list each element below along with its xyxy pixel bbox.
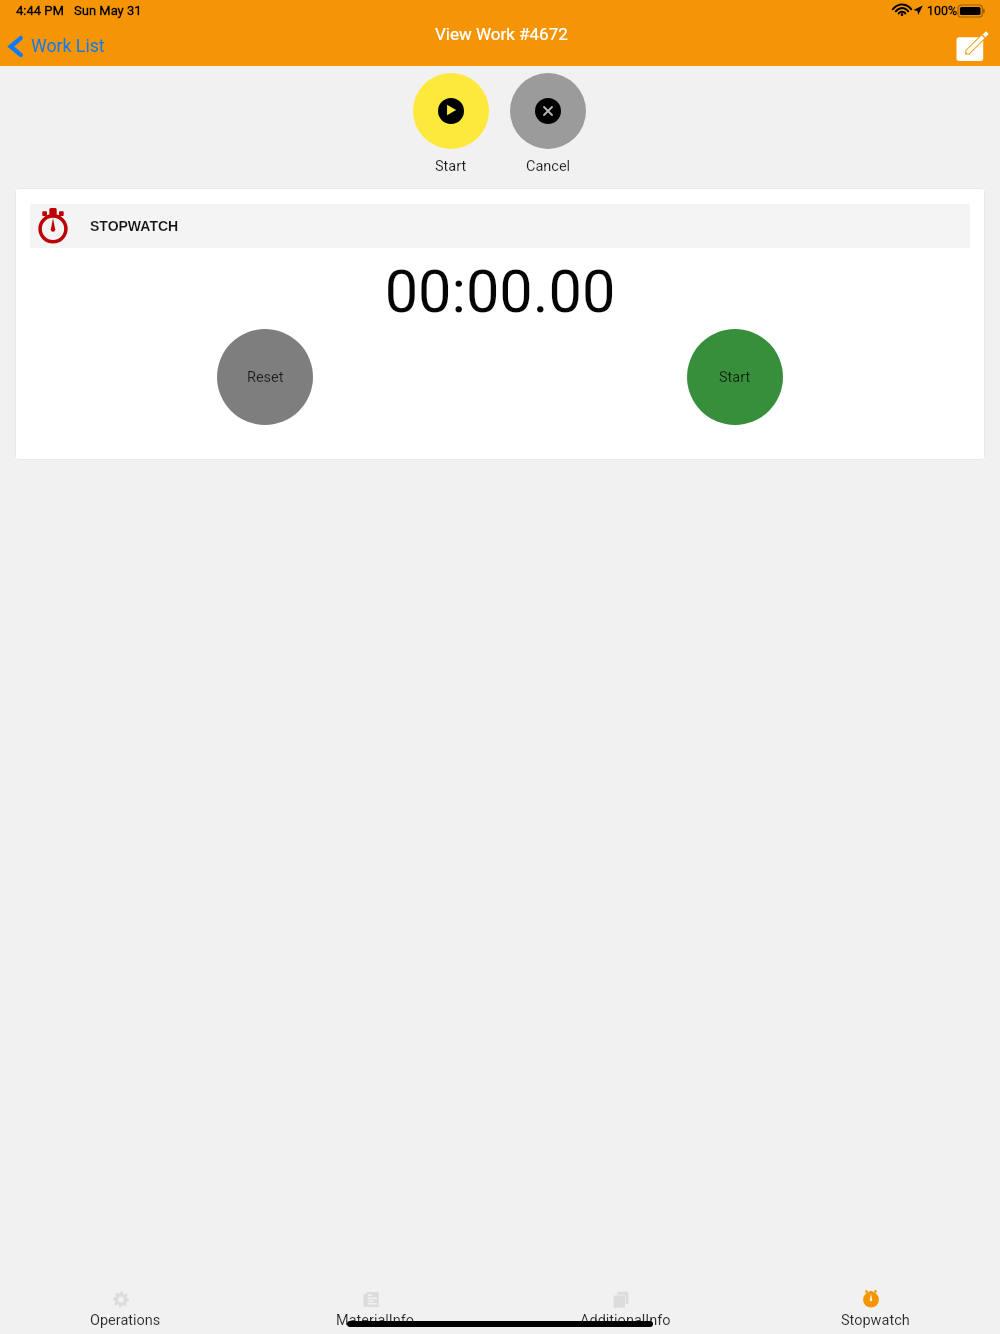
button[interactable]: Work List — [2, 28, 115, 64]
button[interactable]: Cancel — [490, 73, 606, 175]
staticText: Reset — [247, 369, 284, 386]
button[interactable]: Stopwatch — [750, 1282, 1000, 1334]
staticText: STOPWATCH — [90, 218, 179, 234]
button[interactable]: Reset — [217, 329, 313, 425]
staticText: AdditionalInfo — [580, 1312, 671, 1329]
staticText: Work List — [31, 36, 105, 57]
staticText: MaterialInfo — [336, 1312, 415, 1329]
staticText: View Work #4672 — [435, 24, 568, 44]
button[interactable]: Edit — [944, 26, 1000, 66]
staticText: 00:00.00 — [15, 257, 985, 327]
button[interactable]: Operations — [0, 1282, 250, 1334]
staticText: Stopwatch — [841, 1312, 910, 1329]
staticText: 4:44 PM — [16, 3, 64, 18]
staticText: Start — [435, 158, 467, 175]
staticText: 100% — [927, 3, 958, 18]
staticText: Start — [719, 369, 751, 386]
button[interactable]: Start — [687, 329, 783, 425]
staticText: Sun May 31 — [74, 3, 142, 18]
button[interactable]: MaterialInfo — [250, 1282, 500, 1334]
button[interactable]: AdditionalInfo — [500, 1282, 750, 1334]
staticText: Cancel — [526, 158, 571, 175]
staticText: Operations — [90, 1312, 161, 1329]
button[interactable]: Start — [393, 73, 509, 175]
